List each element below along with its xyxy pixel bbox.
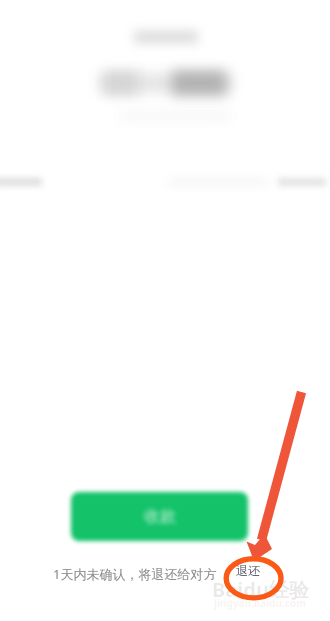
staticText: 1天内未确认，将退还给对方 — [53, 565, 217, 583]
staticText: 收款 — [144, 507, 176, 527]
button[interactable]: 收款 — [71, 492, 248, 541]
staticText: Baidu经验 — [212, 576, 309, 603]
staticText: jingyan.baidu.com — [214, 596, 306, 610]
staticText: 退还 — [236, 563, 260, 578]
